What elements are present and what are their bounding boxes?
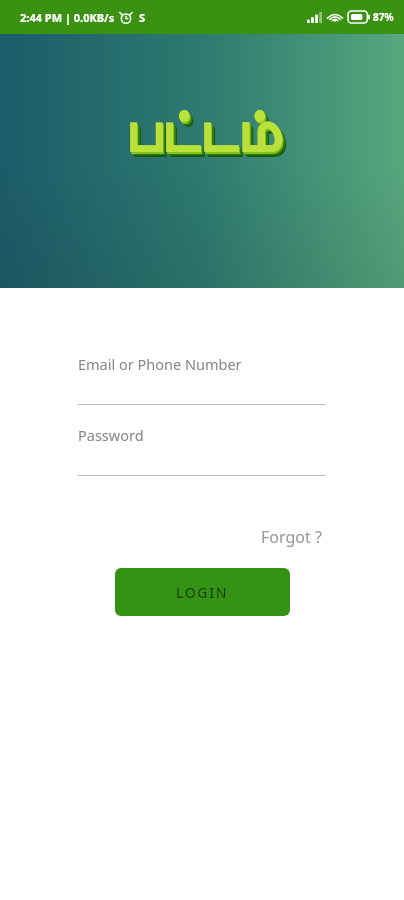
- staticText: பட்டம்: [75, 107, 335, 167]
- staticText: LOGIN: [176, 583, 229, 602]
- staticText: 2:44 PM | 0.0KB/s: [20, 10, 115, 25]
- staticText: Email or Phone Number: [78, 354, 242, 374]
- staticText: Password: [78, 425, 144, 445]
- button[interactable]: Forgot ?: [257, 522, 326, 552]
- staticText: பட்டம்: [72, 104, 332, 164]
- staticText: S: [139, 10, 146, 25]
- button[interactable]: LOGIN: [115, 568, 290, 616]
- staticText: Forgot ?: [261, 526, 322, 548]
- button[interactable]: Email or Phone Number: [78, 354, 326, 405]
- staticText: பட்டம்: [73, 106, 333, 166]
- staticText: பட்டம்: [76, 109, 336, 169]
- button[interactable]: Password: [78, 425, 326, 476]
- staticText: 87%: [373, 10, 394, 24]
